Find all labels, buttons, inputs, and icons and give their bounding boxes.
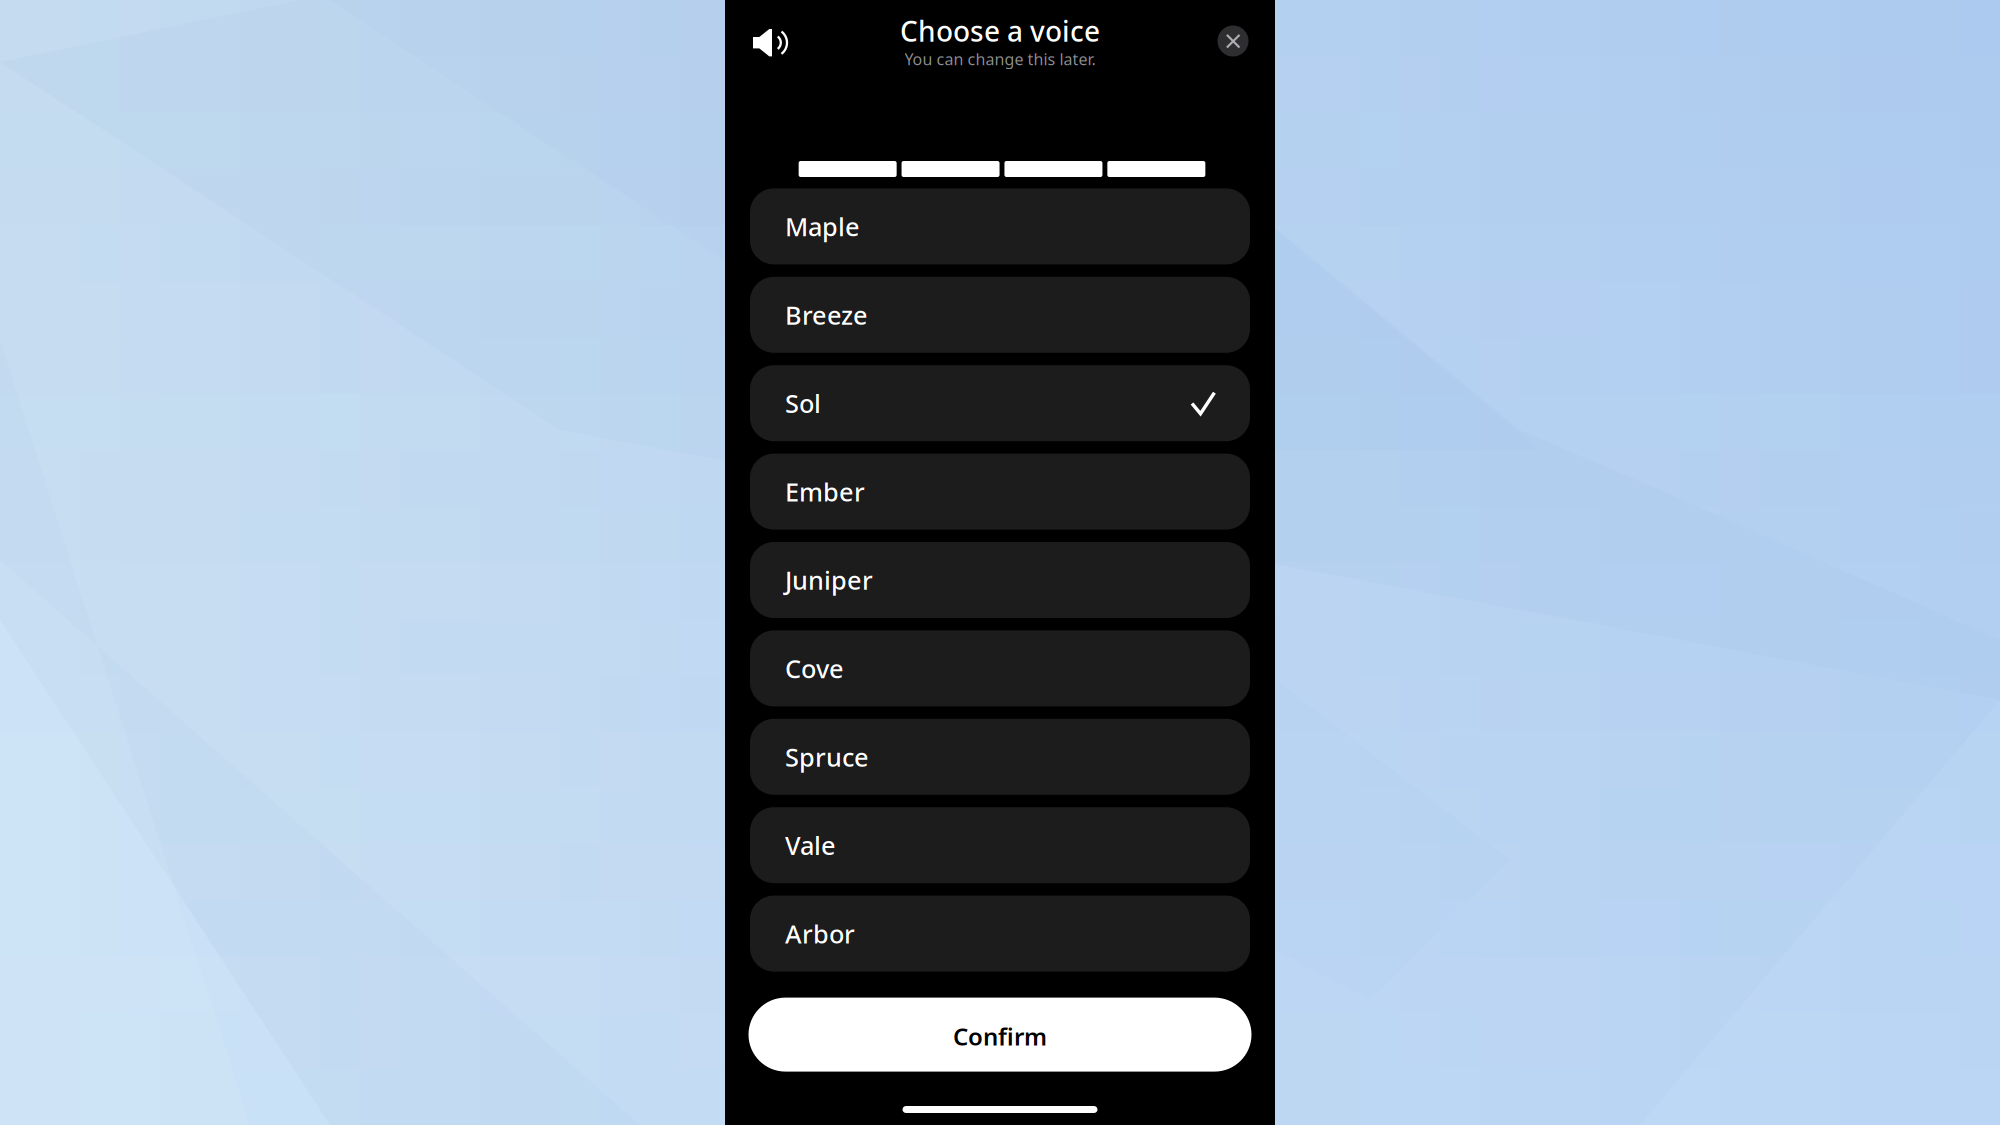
staticText: Spruce <box>785 740 869 774</box>
staticText: Cove <box>785 652 844 685</box>
button[interactable]: Close <box>1211 19 1255 63</box>
staticText: Ember <box>785 475 865 508</box>
button[interactable]: Ember <box>750 454 1250 530</box>
button[interactable]: Spruce <box>750 719 1250 795</box>
button[interactable]: Preview voice <box>748 21 792 65</box>
button[interactable]: Confirm <box>748 998 1251 1072</box>
staticText: Juniper <box>785 563 873 597</box>
button[interactable]: Sol <box>750 365 1250 441</box>
button[interactable]: Arbor <box>750 896 1250 972</box>
button[interactable]: Vale <box>750 807 1250 883</box>
staticText: You can change this later. <box>904 48 1095 70</box>
staticText: Vale <box>785 828 836 862</box>
staticText: Arbor <box>785 917 855 950</box>
button[interactable]: Breeze <box>750 277 1250 353</box>
button[interactable]: Juniper <box>750 542 1250 618</box>
staticText: Confirm <box>953 1020 1047 1052</box>
staticText: Choose a voice <box>900 12 1100 50</box>
button[interactable]: Maple <box>750 188 1250 264</box>
button[interactable]: Cove <box>750 630 1250 706</box>
staticText: Breeze <box>785 298 868 332</box>
staticText: Maple <box>785 210 860 243</box>
staticText: Sol <box>785 386 821 420</box>
